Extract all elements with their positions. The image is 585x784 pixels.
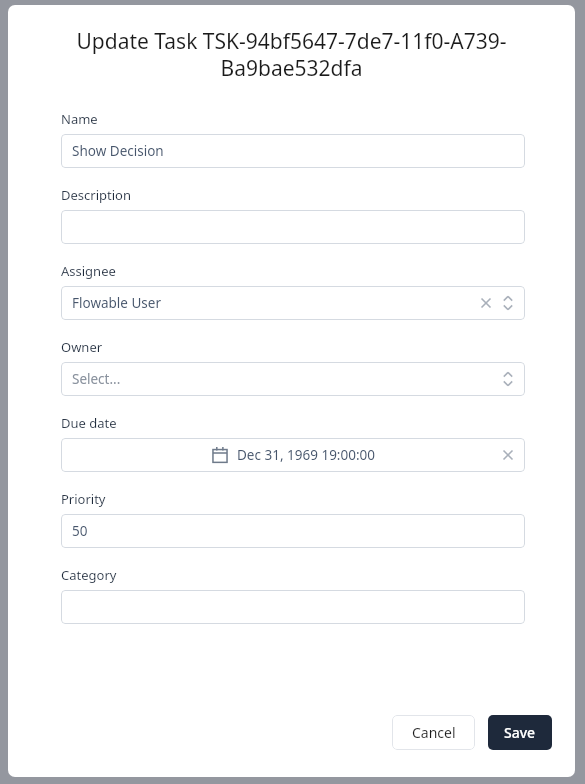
button[interactable]: Save: [488, 715, 552, 750]
button[interactable]: Show Decision: [61, 134, 525, 168]
button[interactable]: Open options: [498, 369, 518, 389]
button[interactable]: Open options: [498, 293, 518, 313]
staticText: Priority: [61, 490, 106, 508]
staticText: Assignee: [61, 262, 116, 280]
staticText: Dec 31, 1969 19:00:00: [237, 446, 375, 464]
staticText: Save: [504, 723, 536, 742]
staticText: Category: [61, 566, 117, 584]
button[interactable]: Clear: [476, 293, 496, 313]
button[interactable]: Cancel: [392, 715, 475, 750]
staticText: Flowable User: [72, 294, 476, 312]
staticText: Due date: [61, 414, 117, 432]
staticText: Owner: [61, 338, 103, 356]
staticText: 50: [72, 522, 88, 540]
staticText: Show Decision: [72, 142, 164, 160]
button[interactable]: 50: [61, 514, 525, 548]
button[interactable]: [61, 210, 525, 244]
staticText: Update Task TSK-94bf5647-7de7-11f0-A739-…: [66, 27, 517, 82]
button[interactable]: Dec 31, 1969 19:00:00: [61, 438, 525, 472]
staticText: Select...: [72, 370, 498, 388]
button[interactable]: Clear: [498, 445, 518, 465]
staticText: Description: [61, 186, 131, 204]
button[interactable]: Flowable User: [61, 286, 525, 320]
button[interactable]: Select...: [61, 362, 525, 396]
staticText: Cancel: [412, 723, 456, 742]
staticText: Name: [61, 110, 98, 128]
button[interactable]: [61, 590, 525, 624]
